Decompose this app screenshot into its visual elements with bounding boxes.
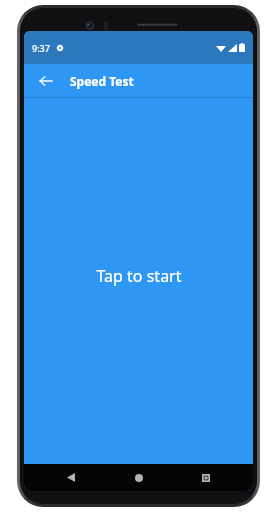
- button[interactable]: Recent apps: [186, 464, 226, 491]
- staticText: 9:37: [32, 42, 50, 54]
- staticText: Tap to start: [96, 265, 182, 287]
- button[interactable]: Tap to start: [24, 98, 253, 464]
- button[interactable]: Back: [32, 67, 60, 95]
- button[interactable]: Back: [51, 464, 91, 491]
- button[interactable]: Home: [119, 464, 159, 491]
- staticText: Speed Test: [70, 73, 134, 89]
